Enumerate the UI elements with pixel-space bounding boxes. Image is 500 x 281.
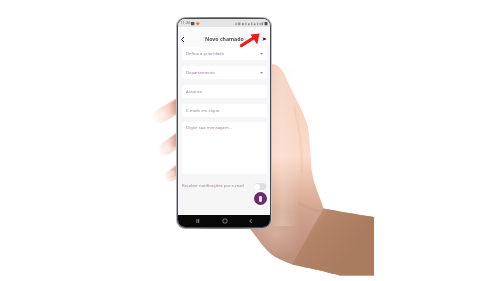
staticText: E-mails em cópia [186, 108, 220, 114]
button[interactable]: Digite sua mensagem... [182, 122, 267, 174]
button[interactable]: Início [218, 215, 231, 227]
staticText: Assunto [186, 89, 202, 95]
button[interactable]: Recentes [191, 215, 204, 227]
staticText: Novo chamado [205, 35, 244, 42]
button[interactable]: Anexar arquivo [254, 192, 267, 205]
button[interactable]: Voltar [178, 34, 187, 44]
button[interactable]: Receber notificações por e-mail [182, 182, 267, 190]
staticText: Departamento [186, 70, 215, 76]
staticText: Receber notificações por e-mail [182, 183, 244, 189]
button[interactable]: Voltar [244, 215, 257, 227]
staticText: 11:26 [180, 20, 191, 26]
button[interactable]: E-mails em cópia [182, 104, 267, 117]
button[interactable]: Departamento [182, 66, 267, 79]
staticText: Defina a prioridade [186, 51, 224, 57]
button[interactable]: Enviar [260, 34, 269, 44]
button[interactable]: Assunto [182, 85, 267, 98]
button[interactable]: Defina a prioridade [182, 47, 267, 60]
staticText: Digite sua mensagem... [186, 125, 233, 131]
